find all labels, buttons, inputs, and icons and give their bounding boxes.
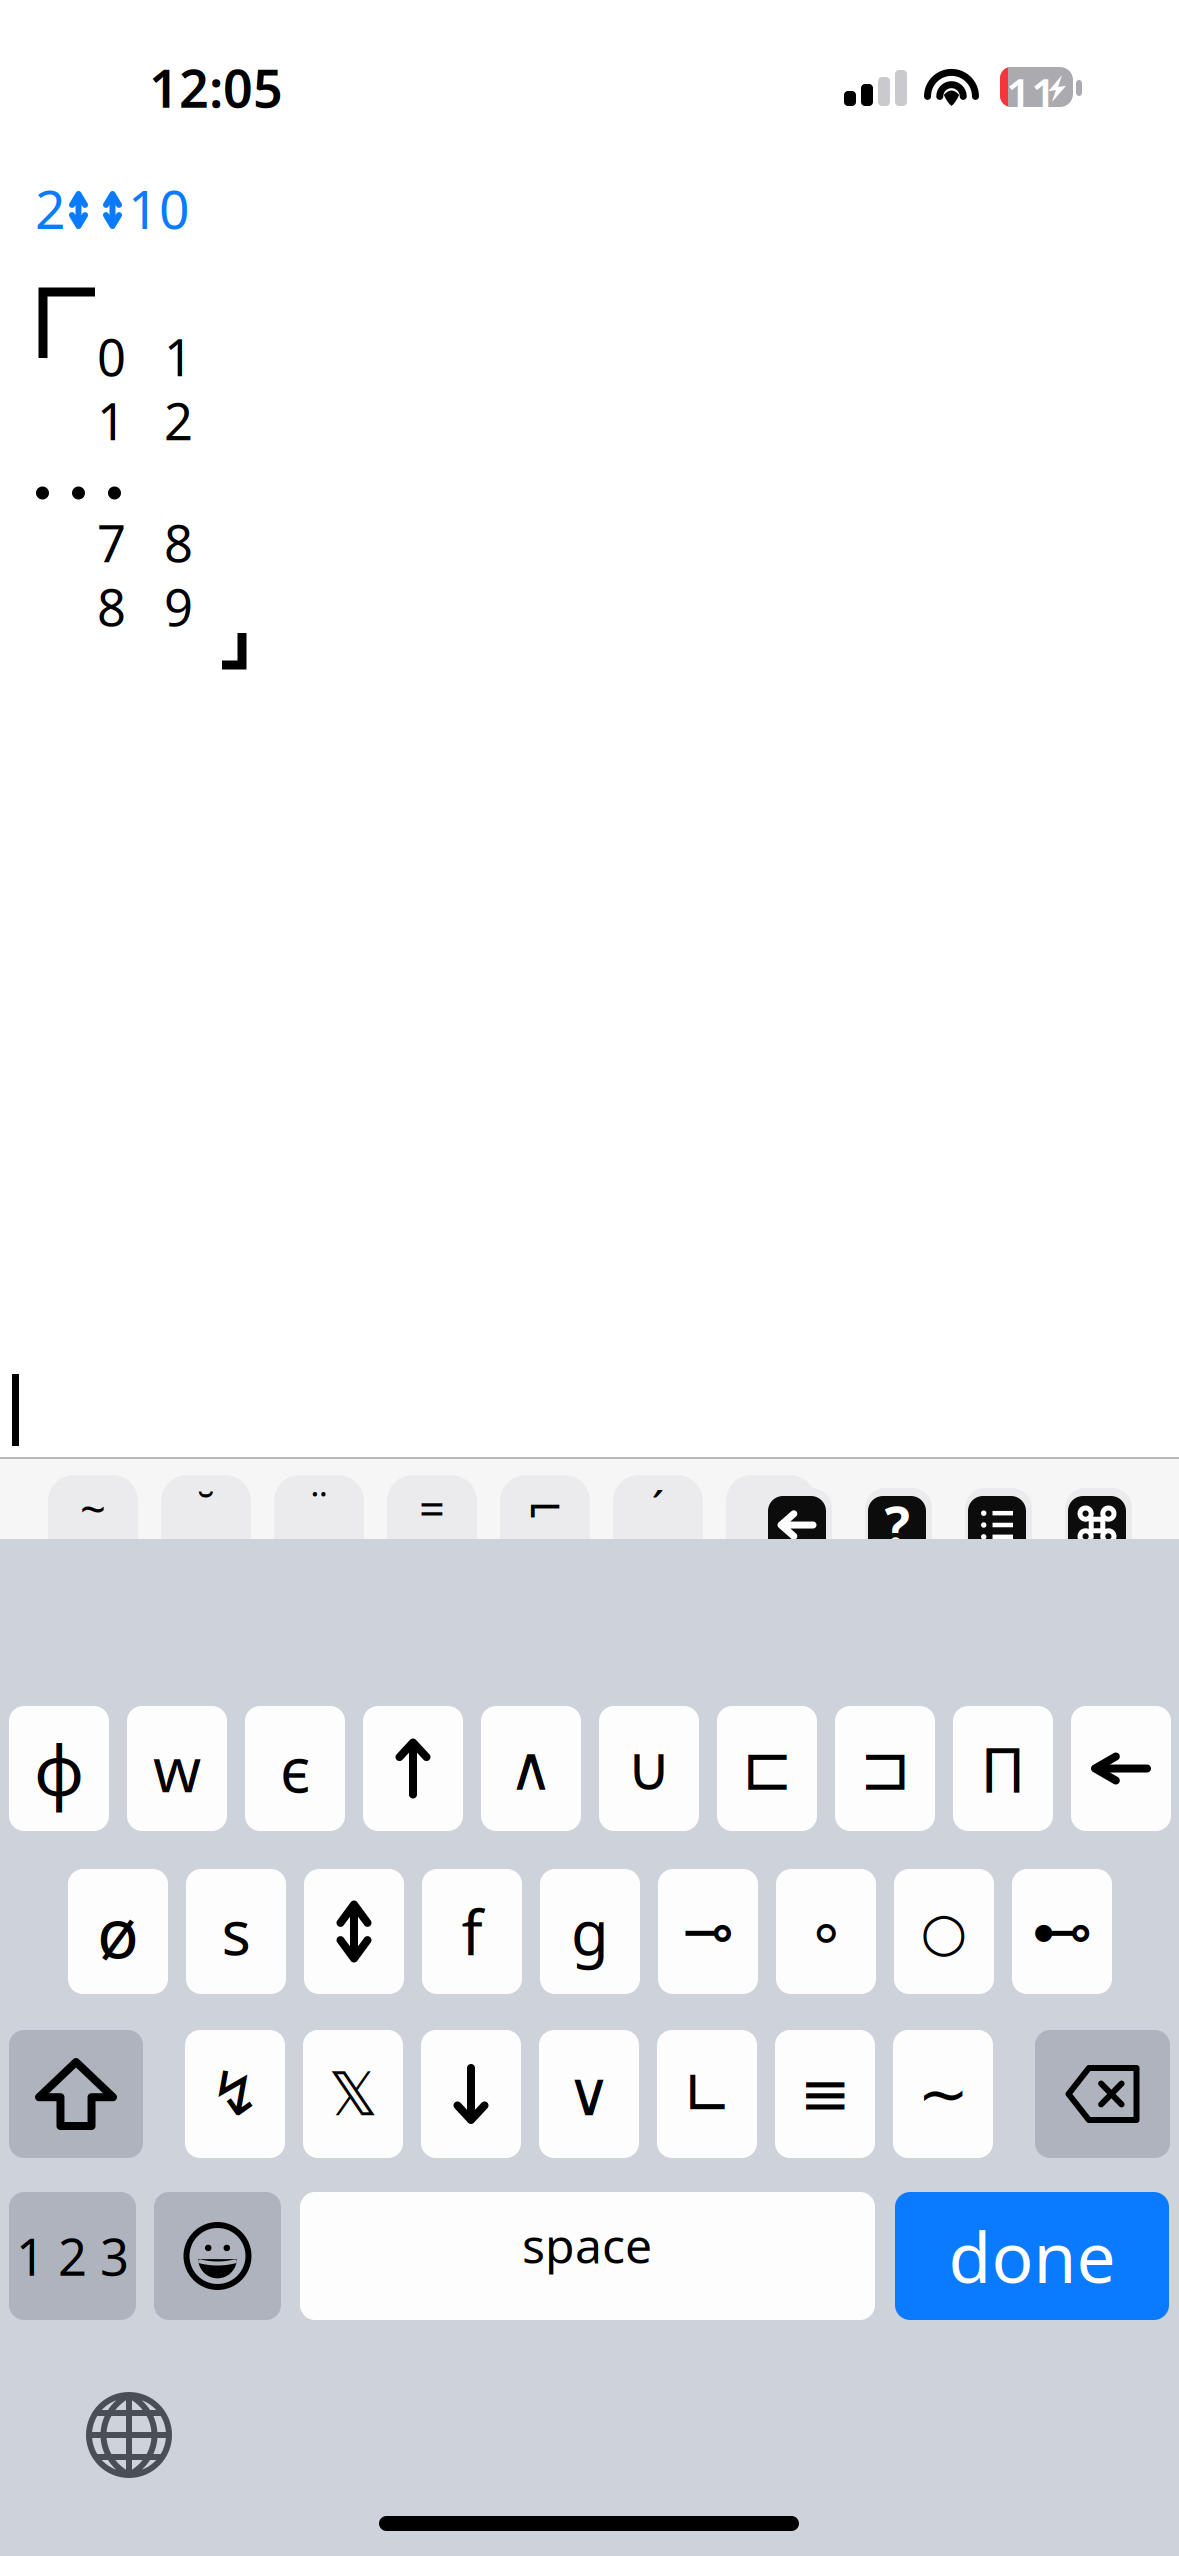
staticText: ∪ xyxy=(626,1734,671,1803)
staticText: ⊸ xyxy=(682,1897,733,1966)
staticText: = xyxy=(419,1478,445,1538)
staticText: 7 xyxy=(97,509,126,576)
staticText: s xyxy=(221,1891,250,1972)
staticText: ∧ xyxy=(508,1734,553,1803)
button[interactable]: ∼ xyxy=(893,2030,993,2158)
staticText: f xyxy=(461,1891,482,1972)
button[interactable]: ⌐ xyxy=(500,1475,590,1541)
button[interactable]: ∟ xyxy=(657,2030,757,2158)
button[interactable]: Back xyxy=(768,1496,826,1566)
button[interactable]: ⊏ xyxy=(717,1706,817,1831)
button[interactable]: Commands xyxy=(1068,1496,1126,1566)
button[interactable]: 1 2 3 xyxy=(9,2192,136,2320)
button[interactable]: 𝕏 xyxy=(303,2030,403,2158)
button[interactable]: ~ xyxy=(48,1475,138,1541)
staticText: 9 xyxy=(164,573,193,640)
button[interactable]: ∧ xyxy=(481,1706,581,1831)
staticText: ∨ xyxy=(566,2059,611,2129)
staticText: Π xyxy=(980,1728,1025,1809)
button[interactable]: Shift xyxy=(9,2030,143,2158)
button[interactable]: Emoji xyxy=(154,2192,281,2320)
staticText: done xyxy=(948,2210,1115,2302)
button[interactable]: f xyxy=(422,1869,522,1994)
button[interactable]: g xyxy=(540,1869,640,1994)
staticText: 1 xyxy=(164,323,193,390)
button[interactable]: Delete xyxy=(1035,2030,1170,2158)
staticText: 10 xyxy=(128,173,190,244)
staticText: space xyxy=(522,2213,652,2277)
button[interactable]: Help xyxy=(868,1496,926,1566)
button[interactable]: ○ xyxy=(894,1869,994,1994)
staticText: ? xyxy=(884,1490,909,1560)
button[interactable]: ⊐ xyxy=(835,1706,935,1831)
staticText: ˘ xyxy=(197,1478,215,1538)
staticText: ∼ xyxy=(917,2059,968,2129)
button[interactable]: ˘ xyxy=(161,1475,251,1541)
staticText: ɸ xyxy=(34,1722,84,1815)
button[interactable]: List xyxy=(968,1496,1026,1566)
staticText: 8 xyxy=(164,509,193,576)
button[interactable]: s xyxy=(186,1869,286,1994)
staticText: ∟ xyxy=(681,2059,732,2129)
staticText: 2 xyxy=(164,387,193,454)
staticText: ⊐ xyxy=(859,1734,910,1803)
button[interactable]: ≡ xyxy=(775,2030,875,2158)
staticText: 𝕏 xyxy=(328,2059,377,2129)
button[interactable]: ↯ xyxy=(185,2030,285,2158)
button[interactable]: ø xyxy=(68,1869,168,1994)
button[interactable]: ϵ xyxy=(245,1706,345,1831)
staticText: ⊷ xyxy=(1031,1897,1092,1966)
button[interactable]: = xyxy=(387,1475,477,1541)
staticText: ⌐ xyxy=(526,1482,564,1534)
button[interactable]: Up down xyxy=(304,1869,404,1994)
button[interactable]: ´ xyxy=(613,1475,703,1541)
button[interactable]: ∪ xyxy=(599,1706,699,1831)
button[interactable]: Next keyboard xyxy=(89,2395,169,2475)
button[interactable]: ɸ xyxy=(9,1706,109,1831)
button[interactable]: Up xyxy=(363,1706,463,1831)
staticText: 1 xyxy=(97,387,126,454)
staticText: 1 2 3 xyxy=(16,2222,129,2290)
staticText: g xyxy=(571,1891,609,1972)
button[interactable]: Π xyxy=(953,1706,1053,1831)
staticText: 8 xyxy=(97,573,126,640)
staticText: 0 xyxy=(97,323,126,390)
staticText: ´ xyxy=(651,1478,664,1538)
staticText: ≡ xyxy=(799,2059,850,2129)
staticText: ø xyxy=(97,1885,139,1978)
staticText: ϵ xyxy=(280,1728,310,1809)
button[interactable]: ∨ xyxy=(539,2030,639,2158)
staticText: ~ xyxy=(80,1478,106,1538)
staticText: 2 xyxy=(35,173,66,244)
button[interactable]: ∘ xyxy=(776,1869,876,1994)
button[interactable]: ¨ xyxy=(274,1475,364,1541)
button[interactable]: Left xyxy=(1071,1706,1171,1831)
button[interactable]: w xyxy=(127,1706,227,1831)
staticText: ○ xyxy=(920,1901,967,1962)
staticText: ¨ xyxy=(306,1478,332,1538)
staticText: w xyxy=(153,1728,201,1809)
button[interactable]: ⊷ xyxy=(1012,1869,1112,1994)
staticText: 12:05 xyxy=(149,53,283,122)
staticText: ↯ xyxy=(209,2059,260,2129)
button[interactable]: done xyxy=(895,2192,1169,2320)
staticText: 11 xyxy=(1006,64,1056,122)
button[interactable]: Down xyxy=(421,2030,521,2158)
button[interactable]: ⊸ xyxy=(658,1869,758,1994)
staticText: ∘ xyxy=(807,1897,845,1966)
button[interactable]: space xyxy=(300,2192,875,2320)
staticText: ⊏ xyxy=(741,1734,792,1803)
